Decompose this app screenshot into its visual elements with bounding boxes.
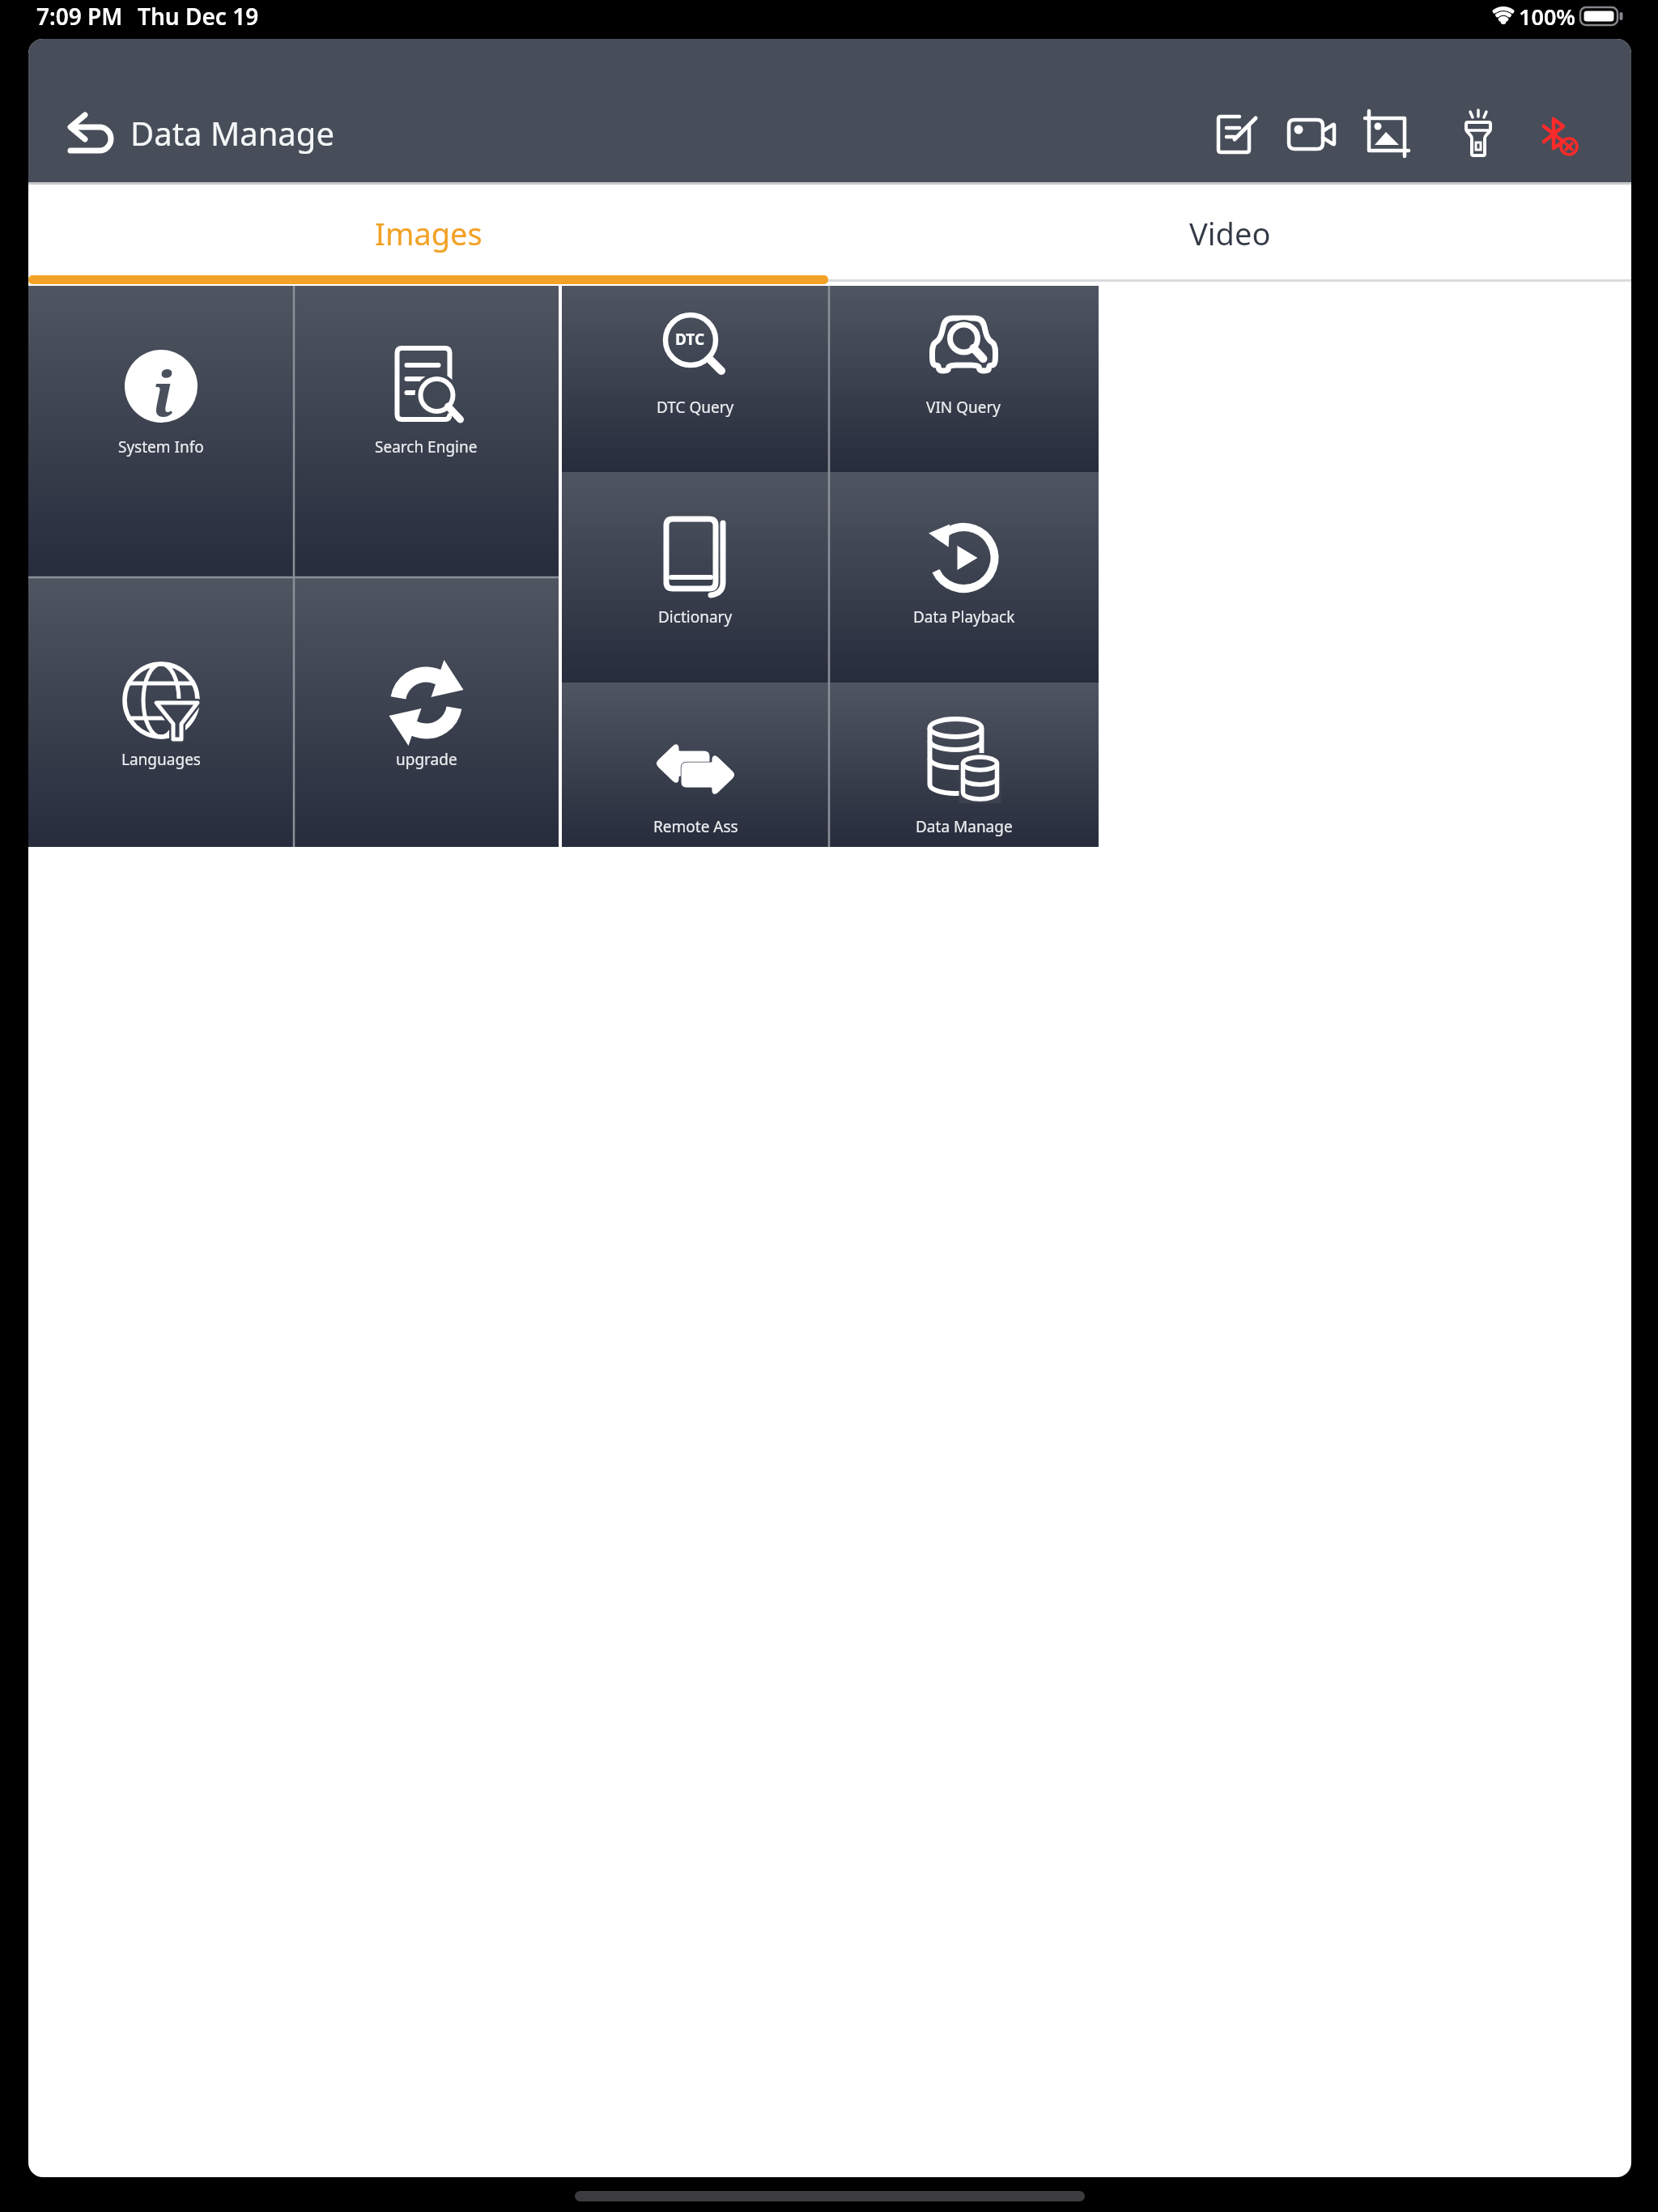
staticText: 100% [1519, 2, 1575, 32]
button[interactable] [61, 104, 320, 160]
button[interactable]: VIN Query [829, 286, 1099, 472]
button[interactable] [1207, 104, 1269, 165]
staticText: Languages [121, 749, 201, 770]
button[interactable]: Data Manage [829, 683, 1099, 847]
button[interactable]: Data Playback [829, 472, 1099, 683]
staticText: Video [1189, 212, 1271, 254]
button[interactable]: Remote Ass [562, 683, 829, 847]
button[interactable] [1443, 104, 1505, 165]
staticText: Search Engine [375, 436, 478, 457]
staticText: 7:09 PM [36, 1, 123, 32]
button[interactable]: upgrade [294, 577, 559, 847]
button[interactable]: Dictionary [562, 472, 829, 683]
staticText: VIN Query [926, 397, 1001, 418]
button[interactable] [1282, 104, 1343, 165]
staticText: upgrade [396, 749, 457, 770]
staticText: Data Manage [130, 111, 334, 155]
staticText: Data Manage [916, 816, 1013, 837]
button[interactable]: System Info [28, 286, 294, 577]
button[interactable]: Languages [28, 577, 294, 847]
button[interactable] [1526, 104, 1588, 165]
button[interactable]: Search Engine [294, 286, 559, 577]
staticText: Dictionary [658, 606, 733, 627]
staticText: DTC Query [657, 397, 734, 418]
staticText: i [152, 352, 174, 417]
staticText: Data Playback [913, 606, 1015, 627]
staticText: Thu Dec 19 [138, 1, 259, 32]
staticText: System Info [118, 436, 204, 457]
button[interactable]: DTC Query [562, 286, 829, 472]
staticText: Remote Ass [653, 816, 738, 837]
button[interactable] [1356, 104, 1418, 165]
staticText: DTC [675, 329, 705, 350]
staticText: Images [375, 212, 483, 254]
button[interactable] [28, 185, 828, 279]
button[interactable] [828, 185, 1631, 279]
